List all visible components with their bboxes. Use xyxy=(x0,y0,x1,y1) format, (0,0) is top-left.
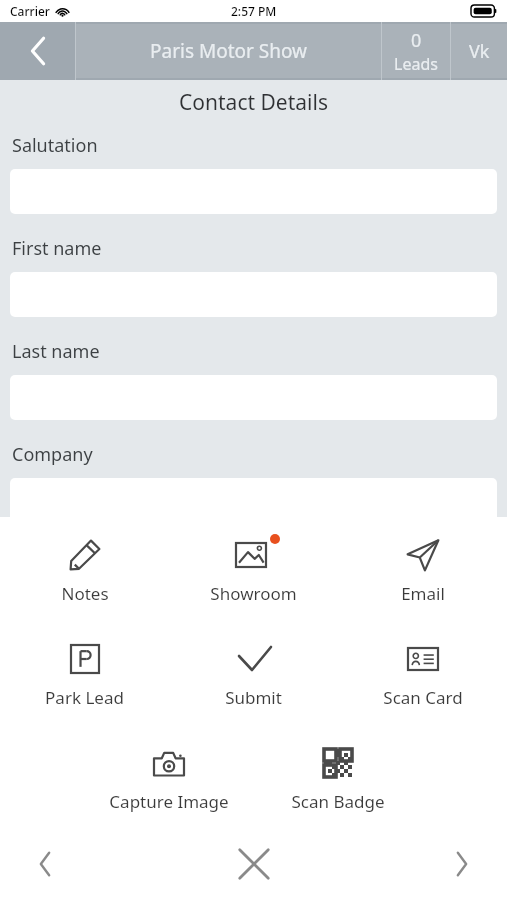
button[interactable]: Next xyxy=(417,828,507,900)
staticText: Leads xyxy=(394,53,438,75)
button[interactable]: 0 xyxy=(382,24,450,78)
staticText: Carrier xyxy=(10,3,50,19)
button[interactable]: Paris Motor Show xyxy=(76,24,381,78)
staticText: Showroom xyxy=(210,582,297,605)
button[interactable]: Vk xyxy=(451,24,507,78)
button[interactable]: Back xyxy=(0,22,75,80)
staticText: Notes xyxy=(61,582,109,605)
staticText: Park Lead xyxy=(45,686,124,709)
staticText: Submit xyxy=(225,686,282,709)
button[interactable]: Notes xyxy=(0,529,169,611)
staticText: Company xyxy=(12,442,93,467)
button[interactable]: Email xyxy=(338,529,507,611)
staticText: Email xyxy=(401,582,445,605)
button[interactable]: Capture Image xyxy=(84,737,253,819)
staticText: Vk xyxy=(469,39,490,64)
button[interactable]: Submit xyxy=(169,633,338,715)
button[interactable]: Scan Card xyxy=(338,633,507,715)
staticText: Paris Motor Show xyxy=(150,38,308,64)
button[interactable]: Previous xyxy=(0,828,90,900)
staticText: 0 xyxy=(411,28,422,53)
staticText: Scan Card xyxy=(383,686,463,709)
staticText: Capture Image xyxy=(109,790,229,813)
staticText: Last name xyxy=(12,339,100,364)
staticText: Scan Badge xyxy=(291,790,385,813)
button[interactable]: Showroom xyxy=(169,529,338,611)
staticText: Contact Details xyxy=(0,88,507,117)
staticText: Salutation xyxy=(12,133,98,158)
button[interactable]: Scan Badge xyxy=(253,737,422,819)
staticText: 2:57 PM xyxy=(231,3,277,19)
staticText: First name xyxy=(12,236,102,261)
button[interactable]: Park Lead xyxy=(0,633,169,715)
button[interactable]: Close xyxy=(219,829,289,899)
